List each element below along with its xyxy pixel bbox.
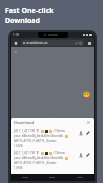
button[interactable]: Edit	[84, 129, 91, 136]
button[interactable]: [4] 1,1,4] 1738 '8'	[11, 149, 94, 171]
button[interactable]: [4] 1,1,4] 1738 '8'	[11, 127, 94, 149]
staticText: m.webtoon.com	[26, 41, 50, 45]
button[interactable]: Recents	[66, 174, 94, 181]
button[interactable]: Back	[11, 174, 38, 181]
staticText: Download	[14, 120, 35, 126]
staticText: #81% #!!5% /!! #81% _Bumer	[14, 139, 57, 143]
staticText: your #Bono0lij,#eduBm !#one#b	[14, 156, 64, 160]
button[interactable]: Edit	[84, 151, 91, 158]
staticText: 1.8 MB	[14, 144, 23, 147]
staticText: -!! Show	[53, 151, 65, 155]
staticText: 1.8 MB	[14, 166, 23, 169]
button[interactable]: Download	[77, 151, 84, 158]
button[interactable]: Home	[13, 40, 19, 46]
staticText: Download	[5, 16, 40, 26]
button[interactable]: Close	[86, 120, 91, 125]
button[interactable]: m.webtoon.com	[21, 40, 84, 46]
staticText: [4] 1,1,4] 1738 '8'	[14, 151, 40, 155]
button[interactable]: Download	[77, 129, 84, 136]
button[interactable]: Home	[38, 174, 66, 181]
staticText: your #Bono0lij,#eduBm !#one#b	[14, 134, 64, 138]
staticText: -!! Show	[53, 129, 65, 133]
button[interactable]: Tabs	[86, 40, 92, 46]
staticText: 1:18	[13, 33, 19, 37]
staticText: [4] 1,1,4] 1738 '8'	[14, 129, 40, 133]
staticText: #81% #!!5% /!! #81% _Bumer	[14, 161, 57, 165]
staticText: Fast One-click	[5, 6, 54, 16]
